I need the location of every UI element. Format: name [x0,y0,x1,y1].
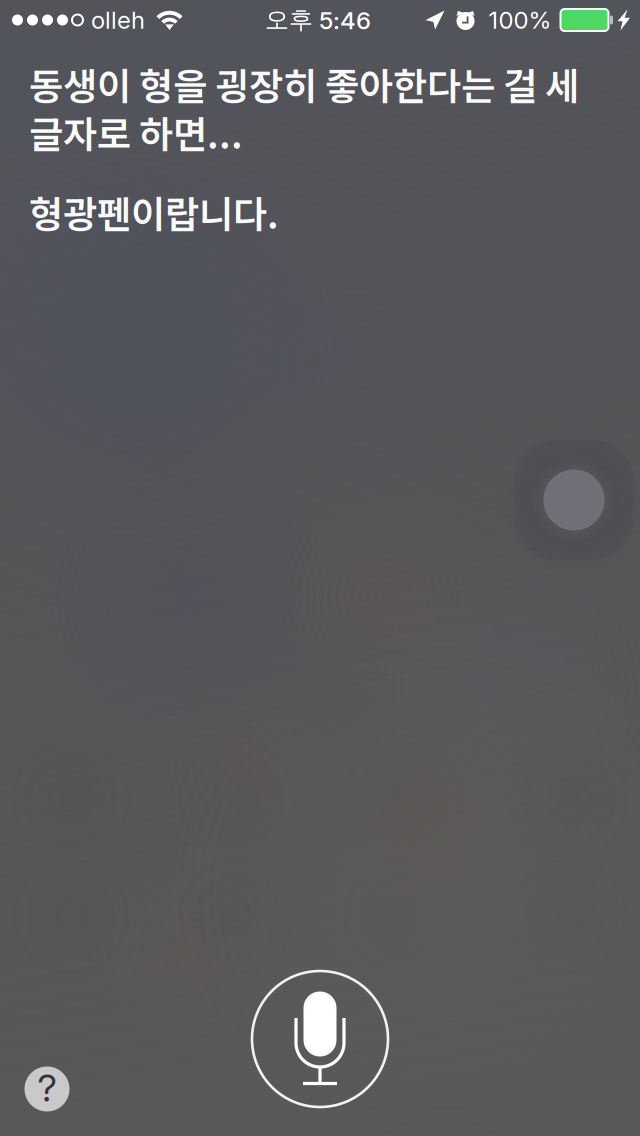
staticText: 형광펜이랍니다. [29,185,279,239]
staticText: 동생이 형을 굉장히 좋아한다는 걸 세 [29,57,579,111]
button[interactable]: Start listening [245,964,395,1114]
staticText: olleh [91,5,145,34]
staticText: 오후 5:46 [265,5,371,35]
staticText: ? [37,1065,56,1111]
button[interactable]: Help [16,1058,78,1120]
staticText: 100% [488,5,551,34]
staticText: 글자로 하면... [29,105,243,159]
